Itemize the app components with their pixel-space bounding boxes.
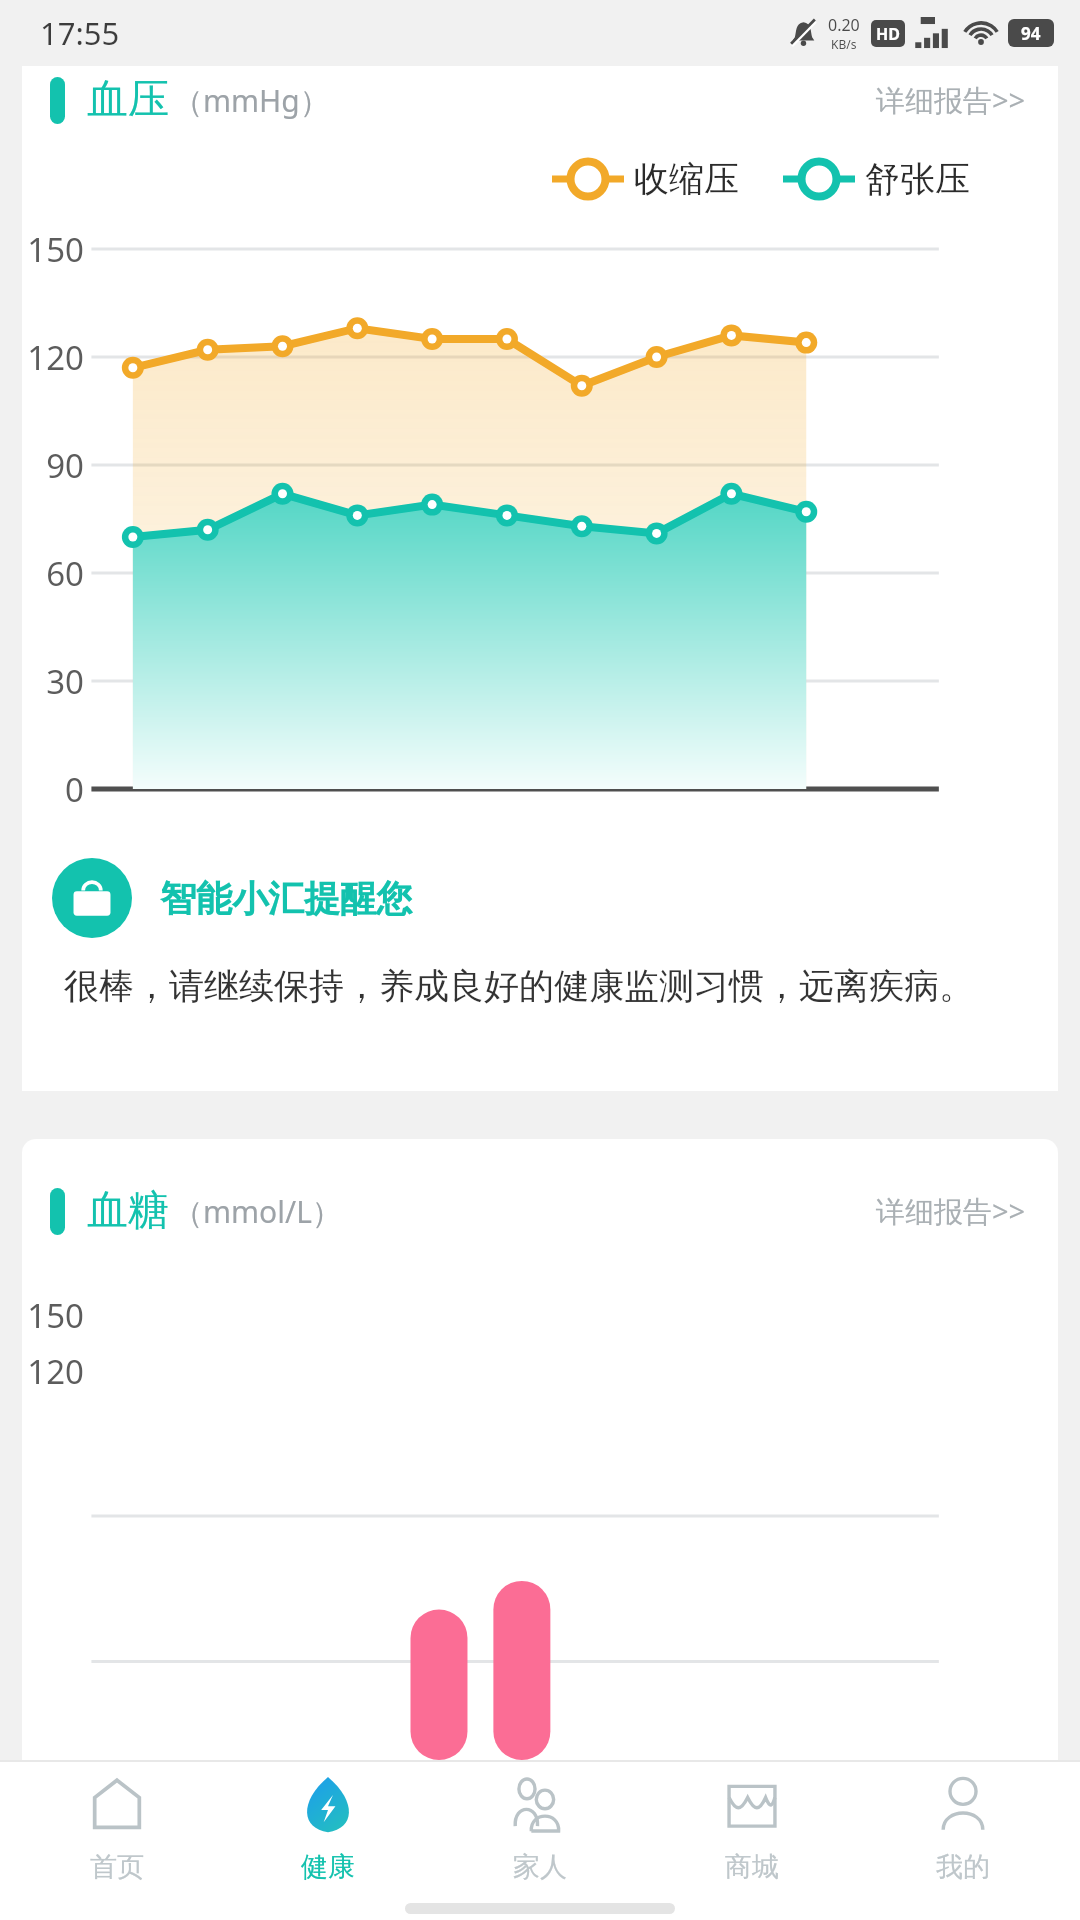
staticText: 首页: [90, 1850, 144, 1884]
other: 智能小汇: [52, 858, 132, 938]
staticText: 详细报告>>: [876, 80, 1026, 120]
staticText: 健康: [301, 1850, 355, 1884]
button[interactable]: 我的: [868, 1770, 1058, 1888]
button[interactable]: 健康: [233, 1770, 423, 1888]
button[interactable]: 首页: [22, 1770, 212, 1888]
staticText: 0: [22, 767, 84, 812]
staticText: 智能小汇提醒您: [160, 876, 412, 921]
staticText: 90: [22, 443, 84, 488]
staticText: 0.20: [828, 14, 860, 36]
staticText: 30: [22, 659, 84, 704]
staticText: 血糖: [87, 1185, 169, 1237]
staticText: 我的: [936, 1850, 990, 1884]
button[interactable]: 商城: [657, 1770, 847, 1888]
staticText: 120: [22, 1349, 84, 1394]
staticText: 60: [22, 551, 84, 596]
staticText: 150: [22, 227, 84, 272]
staticText: KB/s: [831, 36, 857, 52]
staticText: （mmol/L）: [173, 1191, 342, 1232]
staticText: 120: [22, 335, 84, 380]
staticText: 17:55: [40, 12, 120, 54]
staticText: 150: [22, 1293, 84, 1338]
button[interactable]: 详细报告>>: [870, 1181, 1032, 1241]
staticText: 商城: [725, 1850, 779, 1884]
staticText: HD: [876, 23, 900, 45]
staticText: （mmHg）: [173, 80, 330, 121]
staticText: 94: [1021, 22, 1041, 45]
staticText: 很棒，请继续保持，养成良好的健康监测习惯，远离疾病。: [64, 964, 974, 1008]
staticText: 舒张压: [865, 157, 970, 201]
staticText: 收缩压: [634, 157, 739, 201]
staticText: 血压: [87, 74, 169, 126]
staticText: 详细报告>>: [876, 1191, 1026, 1231]
button[interactable]: 家人: [445, 1770, 635, 1888]
button[interactable]: 舒张压: [783, 156, 970, 202]
button[interactable]: 详细报告>>: [870, 70, 1032, 130]
staticText: 家人: [513, 1850, 567, 1884]
button[interactable]: 收缩压: [552, 156, 739, 202]
